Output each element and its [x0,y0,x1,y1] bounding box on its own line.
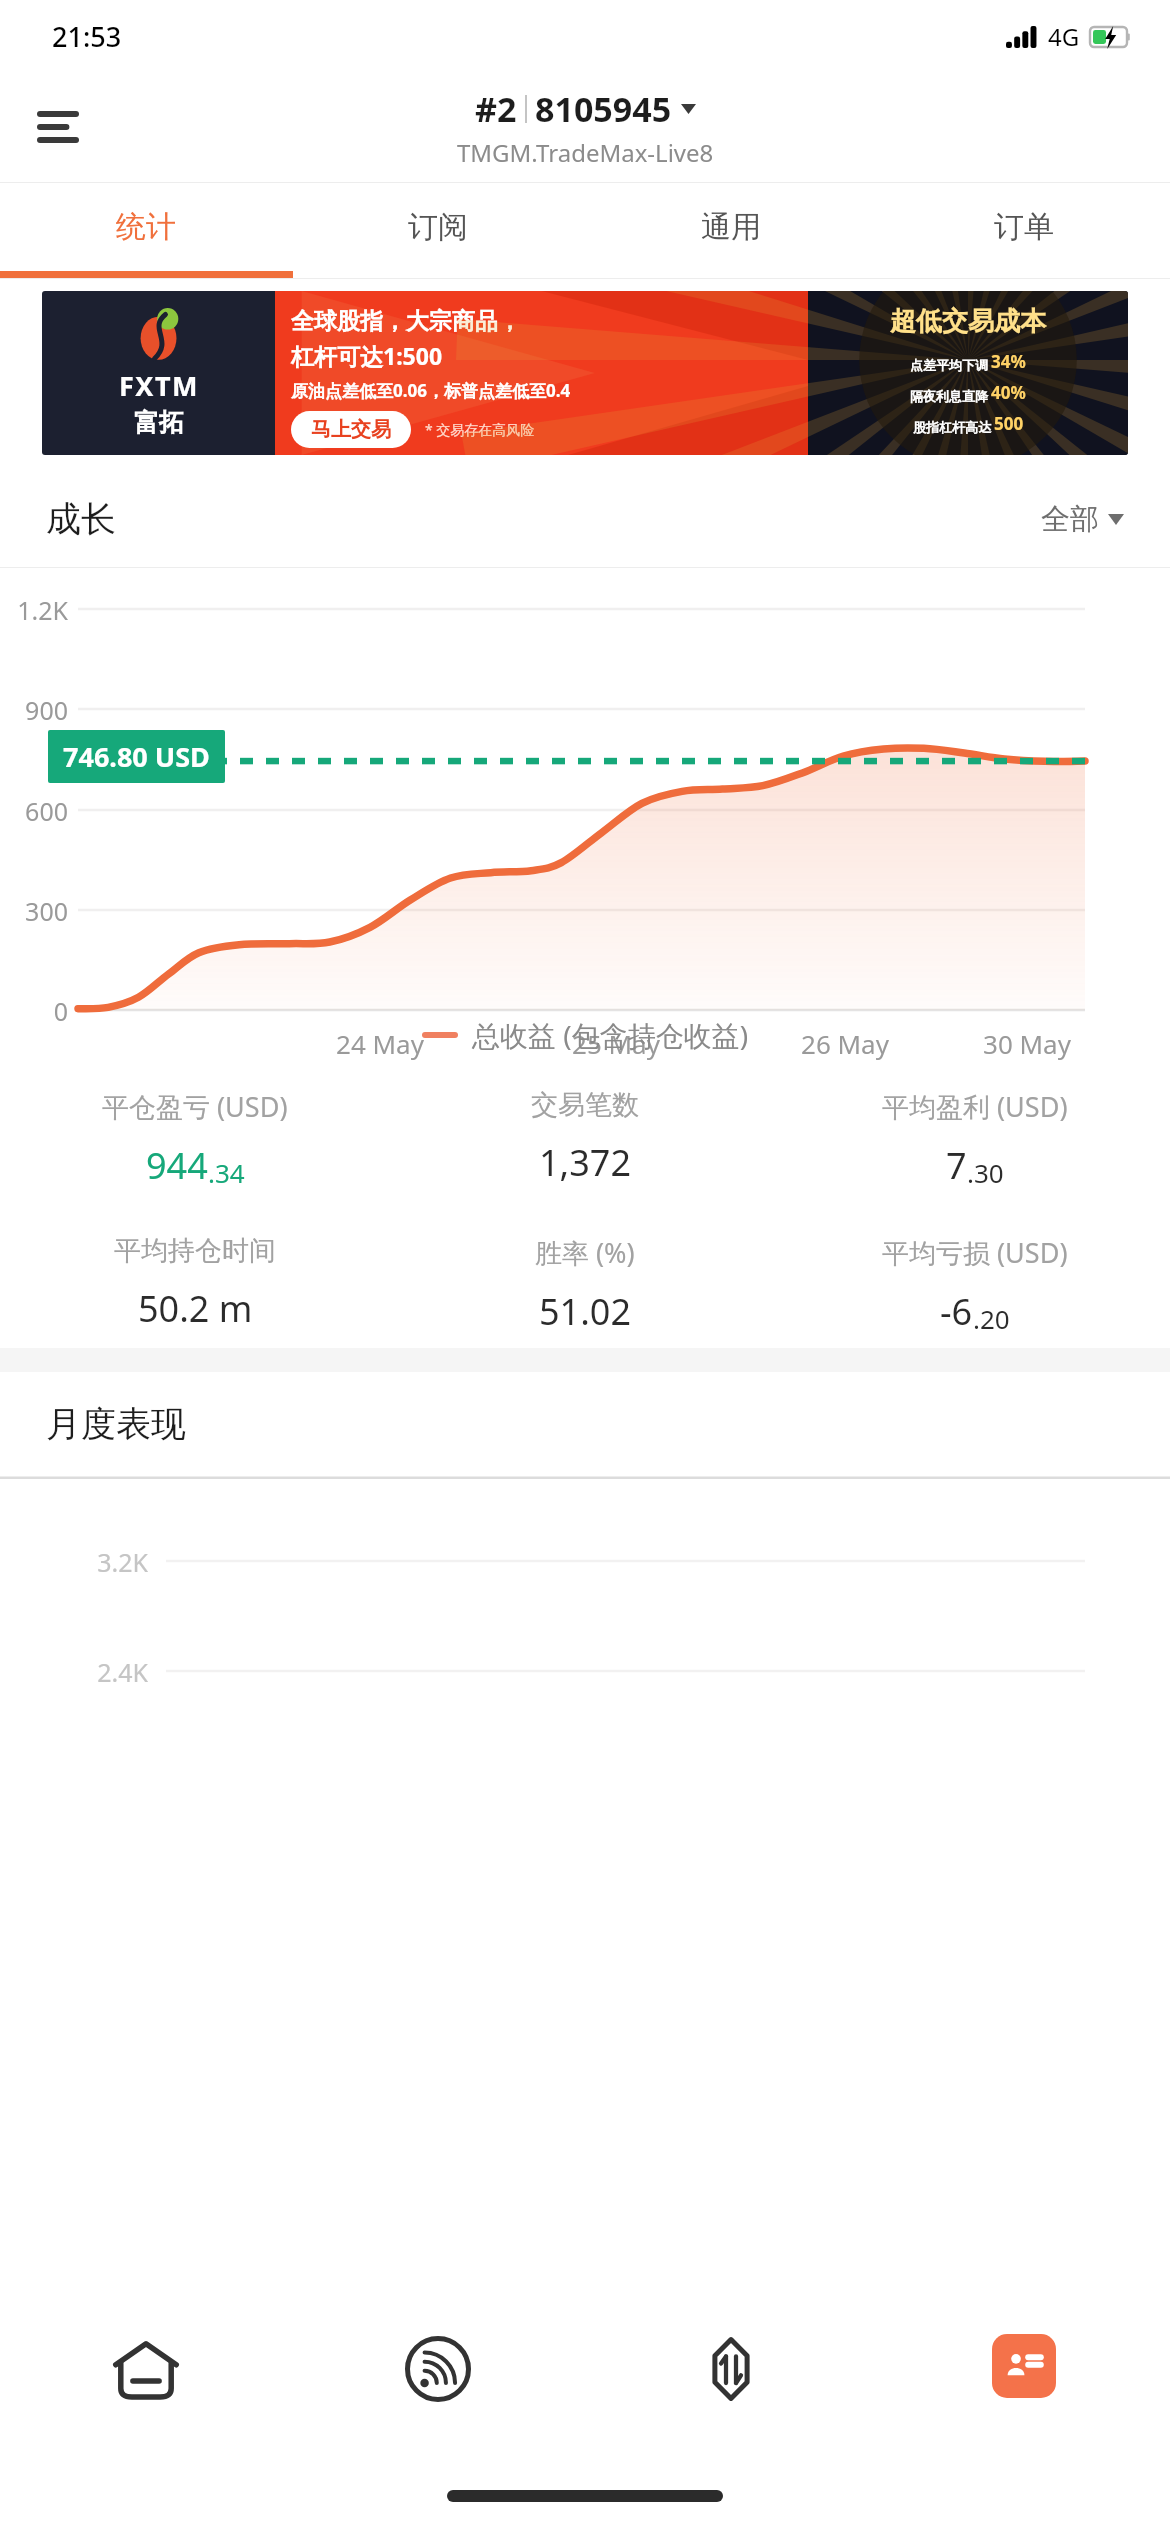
staticText: 统计 [116,208,176,246]
staticText: 21:53 [52,18,122,55]
button[interactable]: FXTM [42,291,1128,455]
staticText: 900 [0,693,68,727]
staticText: 订阅 [408,208,468,246]
button[interactable]: 马上交易 [291,411,411,448]
staticText: -6 [940,1287,973,1336]
staticText: 杠杆可达1:500 [291,340,443,371]
staticText: 0 [0,994,68,1028]
staticText: 7 [946,1141,967,1190]
staticText: TMGM.TradeMax-Live8 [457,136,714,169]
staticText: 富拓 [134,407,184,438]
button[interactable]: #2 [457,86,714,169]
staticText: 1.2K [0,593,68,627]
staticText: 746.80 USD [63,738,210,775]
button[interactable]: 订单 [877,183,1170,271]
button[interactable]: Menu [26,95,90,159]
button[interactable]: Signals [292,2308,584,2460]
staticText: .20 [973,1301,1010,1336]
staticText: 51.02 [539,1287,632,1336]
staticText: 600 [0,794,68,828]
staticText: 全部 [1041,501,1099,538]
staticText: 8105945 [535,86,672,132]
staticText: 50.2 m [138,1284,253,1333]
staticText: 2.4K [0,1655,148,1689]
staticText: 平均持仓时间 [114,1234,276,1268]
button[interactable]: Home [0,2308,292,2460]
staticText: 944 [146,1141,208,1190]
staticText: * 交易存在高风险 [425,420,535,439]
button[interactable]: Trade [584,2308,877,2460]
staticText: 月度表现 [46,1402,186,1446]
staticText: 500 [994,412,1024,435]
button[interactable]: 通用 [584,183,877,271]
staticText: 1,372 [539,1138,632,1187]
staticText: 平仓盈亏 (USD) [102,1088,288,1125]
staticText: 24 May [300,1026,460,1061]
staticText: 4G [1048,20,1080,53]
staticText: 超低交易成本 [890,305,1046,338]
staticText: 马上交易 [311,417,391,442]
staticText: 平均亏损 (USD) [882,1234,1068,1271]
staticText: 平均盈利 (USD) [882,1088,1068,1125]
button[interactable]: 订阅 [292,183,584,271]
button[interactable]: 全部 [1041,501,1124,538]
staticText: 全球股指，大宗商品， [291,307,521,336]
staticText: 总收益 (包含持仓收益) [472,1016,749,1054]
staticText: 3.2K [0,1545,148,1579]
staticText: #2 [475,86,517,132]
staticText: 300 [0,894,68,928]
staticText: .34 [208,1155,245,1190]
staticText: 交易笔数 [531,1088,639,1122]
staticText: 30 May [947,1026,1107,1061]
staticText: 订单 [994,208,1054,246]
staticText: 胜率 (%) [535,1234,635,1271]
staticText: 点差平均下调 [910,357,988,373]
staticText: 34% [991,350,1026,373]
staticText: .30 [967,1155,1004,1190]
staticText: 成长 [46,497,116,541]
staticText: 原油点差低至0.06，标普点差低至0.4 [291,379,571,402]
button[interactable]: Profile [877,2308,1170,2460]
staticText: 26 May [765,1026,925,1061]
staticText: 股指杠杆高达 [913,419,991,435]
button[interactable]: 统计 [0,183,292,271]
staticText: 40% [991,381,1026,404]
staticText: 通用 [701,208,761,246]
staticText: 隔夜利息直降 [910,388,988,404]
staticText: 25 May [536,1026,696,1061]
staticText: FXTM [119,367,199,404]
